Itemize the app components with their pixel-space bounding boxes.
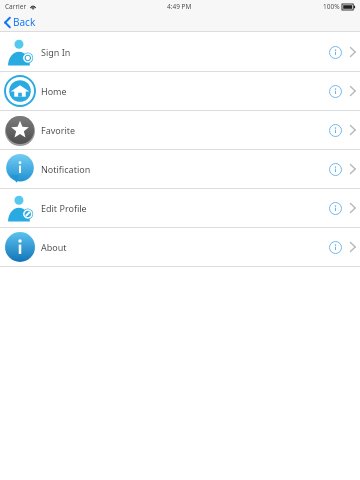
staticText: Back xyxy=(13,15,36,29)
button[interactable]: Info about Home xyxy=(324,80,346,102)
staticText: Favorite xyxy=(41,124,76,136)
staticText: 4:49 PM xyxy=(167,2,192,11)
button[interactable]: Info about Notification xyxy=(324,158,346,180)
button[interactable]: Home xyxy=(0,72,360,110)
staticText: Carrier xyxy=(5,2,27,11)
button[interactable]: About xyxy=(0,228,360,266)
staticText: Edit Profile xyxy=(41,202,87,214)
staticText: Sign In xyxy=(41,46,71,58)
button[interactable]: Favorite xyxy=(0,111,360,149)
button[interactable]: Info about Favorite xyxy=(324,119,346,141)
button[interactable]: Info about Edit Profile xyxy=(324,197,346,219)
staticText: About xyxy=(41,241,67,253)
button[interactable]: Edit Profile xyxy=(0,189,360,227)
staticText: Home xyxy=(41,85,67,97)
button[interactable]: Info about Sign In xyxy=(324,41,346,63)
staticText: Notification xyxy=(41,163,91,175)
staticText: 100% xyxy=(323,2,340,11)
button[interactable]: Sign In xyxy=(0,33,360,71)
button[interactable]: Notification xyxy=(0,150,360,188)
button[interactable]: Back xyxy=(3,15,36,29)
button[interactable]: Info about About xyxy=(324,236,346,258)
